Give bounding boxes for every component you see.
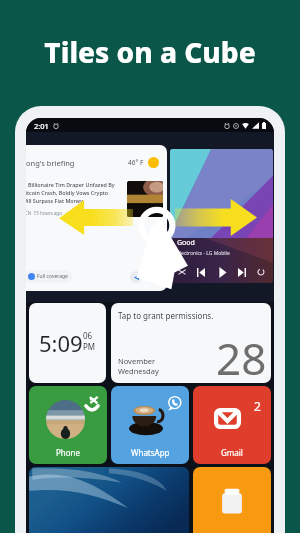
- staticText: Phone: [56, 447, 81, 458]
- button[interactable]: [193, 467, 271, 533]
- staticText: Gmail: [221, 447, 243, 458]
- staticText: 3. Billionaire Tim Draper Unfazed By Bit…: [26, 181, 115, 205]
- staticText: CCN 15 hours ago: [26, 210, 62, 216]
- button[interactable]: 5:09: [29, 303, 106, 383]
- staticText: 2: [254, 398, 261, 414]
- button[interactable]: Phone: [29, 386, 107, 464]
- button[interactable]: Jong's briefing: [26, 145, 167, 291]
- staticText: WhatsApp: [131, 447, 170, 458]
- staticText: 46° F: [128, 158, 144, 167]
- staticText: Tap to grant permissions.: [118, 310, 214, 321]
- button[interactable]: [29, 467, 189, 533]
- staticText: 5:09: [39, 328, 83, 358]
- button[interactable]: Previous: [195, 266, 207, 278]
- button[interactable]: WhatsApp: [111, 386, 189, 464]
- staticText: November Wednesday: [118, 356, 159, 376]
- button[interactable]: Tap to grant permissions.: [111, 303, 271, 383]
- button[interactable]: Previous: [130, 271, 142, 283]
- staticText: Jong's briefing: [26, 158, 75, 168]
- staticText: 28: [216, 328, 267, 383]
- button[interactable]: Good: [170, 149, 273, 283]
- staticText: Full coverage: [37, 273, 68, 280]
- staticText: 06: [83, 330, 93, 341]
- staticText: 2:01: [34, 121, 49, 131]
- button[interactable]: Next: [236, 266, 248, 278]
- staticText: PM: [83, 341, 96, 352]
- button[interactable]: Repeat: [255, 266, 267, 278]
- staticText: Tiles on a Cube: [44, 33, 256, 71]
- button[interactable]: 2: [193, 386, 271, 464]
- button[interactable]: Play: [215, 265, 229, 279]
- button[interactable]: Shuffle: [176, 266, 188, 278]
- staticText: Good: [177, 238, 195, 248]
- staticText: Electronics · LG Mobile: [177, 250, 230, 257]
- button[interactable]: Full coverage: [26, 270, 72, 283]
